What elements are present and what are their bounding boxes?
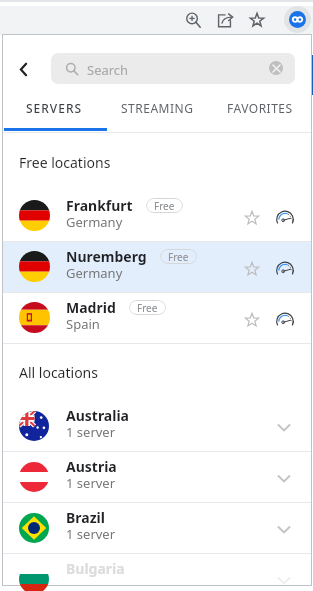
staticText: Australia <box>66 406 129 425</box>
button[interactable]: Add to favorites <box>242 310 262 330</box>
button[interactable]: Speed test <box>274 207 296 229</box>
button[interactable]: Expand <box>274 468 294 488</box>
staticText: Germany <box>66 264 123 282</box>
button[interactable]: Add to favorites <box>242 208 262 228</box>
staticText: Bulgaria <box>66 559 125 578</box>
button[interactable]: Nuremberg <box>3 242 311 292</box>
staticText: 1 server <box>66 525 116 543</box>
button[interactable]: Extension <box>284 6 311 33</box>
button[interactable]: Zoom <box>185 12 201 28</box>
button[interactable]: Clear search <box>269 61 283 75</box>
button[interactable]: Australia <box>3 401 311 451</box>
staticText: STREAMING <box>121 100 194 116</box>
staticText: SERVERS <box>26 100 83 116</box>
staticText: Germany <box>66 213 123 231</box>
staticText: Madrid <box>66 298 116 317</box>
button[interactable]: Brazil <box>3 503 311 553</box>
staticText: Frankfurt <box>66 196 133 215</box>
staticText: 1 server <box>66 474 116 492</box>
staticText: 1 server <box>66 423 116 441</box>
button[interactable]: Add to favorites <box>242 259 262 279</box>
button[interactable]: STREAMING <box>106 98 209 133</box>
staticText: Brazil <box>66 508 105 527</box>
staticText: Austria <box>66 457 117 476</box>
staticText: Free <box>137 301 158 315</box>
button[interactable]: Bulgaria <box>3 554 311 585</box>
button[interactable]: Speed test <box>274 309 296 331</box>
button[interactable]: Frankfurt <box>3 191 311 241</box>
button[interactable]: FAVORITES <box>209 98 311 133</box>
button[interactable]: SERVERS <box>3 98 106 133</box>
staticText: Free <box>154 199 175 213</box>
staticText: Search <box>87 61 129 79</box>
button[interactable]: Expand <box>274 417 294 437</box>
button[interactable]: Speed test <box>274 258 296 280</box>
staticText: Nuremberg <box>66 247 147 266</box>
button[interactable]: Search <box>51 53 295 84</box>
button[interactable]: Share <box>217 12 233 28</box>
staticText: FAVORITES <box>227 100 293 116</box>
staticText: All locations <box>19 363 98 382</box>
staticText: Free locations <box>19 153 111 172</box>
button[interactable]: Expand <box>274 570 294 590</box>
button[interactable]: Bookmark <box>250 13 264 27</box>
staticText: Spain <box>66 315 100 333</box>
button[interactable]: Austria <box>3 452 311 502</box>
button[interactable]: Expand <box>274 519 294 539</box>
button[interactable]: Madrid <box>3 293 311 343</box>
button[interactable]: Back <box>10 56 36 82</box>
staticText: Free <box>168 250 189 264</box>
